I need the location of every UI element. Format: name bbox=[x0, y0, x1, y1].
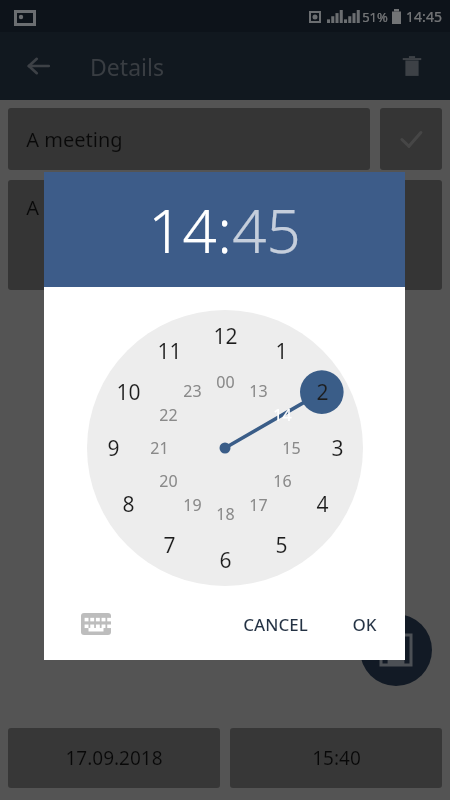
staticText: 17 bbox=[249, 494, 268, 516]
button[interactable]: A meeting bbox=[8, 108, 370, 170]
button[interactable]: 1 bbox=[264, 334, 298, 368]
staticText: : bbox=[217, 189, 232, 271]
staticText: 51% bbox=[362, 8, 388, 26]
button[interactable]: 22 bbox=[151, 398, 185, 432]
staticText: 3 bbox=[331, 434, 344, 463]
staticText: Details bbox=[90, 51, 164, 82]
button[interactable]: 20 bbox=[151, 464, 185, 498]
staticText: CANCEL bbox=[243, 613, 308, 636]
button[interactable]: 4 bbox=[305, 487, 339, 521]
button[interactable]: 16 bbox=[265, 464, 299, 498]
staticText: 14:45 bbox=[406, 7, 442, 26]
staticText: 7 bbox=[163, 531, 176, 560]
button[interactable]: 15 bbox=[274, 431, 308, 465]
staticText: 16 bbox=[273, 470, 292, 492]
button[interactable]: 6 bbox=[208, 543, 242, 577]
staticText: 20 bbox=[159, 470, 178, 492]
button[interactable]: 3 bbox=[320, 431, 354, 465]
button[interactable]: 00 bbox=[208, 365, 242, 399]
button[interactable]: 15:40 bbox=[230, 728, 442, 788]
staticText: 15 bbox=[282, 437, 301, 459]
button[interactable]: CANCEL bbox=[233, 605, 318, 644]
button[interactable]: 14 bbox=[265, 398, 299, 432]
button[interactable]: A n bbox=[8, 180, 442, 290]
staticText: 45 bbox=[232, 189, 301, 271]
button[interactable]: 8 bbox=[111, 487, 145, 521]
button[interactable]: 12 bbox=[208, 319, 242, 353]
staticText: 15:40 bbox=[312, 745, 361, 771]
staticText: 22 bbox=[159, 404, 178, 426]
button[interactable]: Save bbox=[360, 614, 432, 686]
staticText: 14 bbox=[273, 404, 292, 426]
button[interactable]: Switch to keyboard input bbox=[74, 602, 118, 646]
staticText: 5 bbox=[275, 531, 288, 560]
staticText: 4 bbox=[316, 490, 329, 519]
staticText: 23 bbox=[183, 380, 202, 402]
staticText: 10 bbox=[116, 378, 141, 407]
button[interactable]: 13 bbox=[241, 374, 275, 408]
button[interactable]: 21 bbox=[142, 431, 176, 465]
button[interactable]: 17.09.2018 bbox=[8, 728, 220, 788]
staticText: 8 bbox=[122, 490, 135, 519]
button[interactable]: 5 bbox=[264, 528, 298, 562]
button[interactable]: 2 bbox=[305, 375, 339, 409]
staticText: OK bbox=[352, 613, 377, 636]
button[interactable]: 45 bbox=[232, 189, 301, 271]
button[interactable]: 10 bbox=[111, 375, 145, 409]
staticText: 19 bbox=[183, 494, 202, 516]
staticText: 00 bbox=[216, 371, 235, 393]
staticText: 18 bbox=[216, 503, 235, 525]
staticText: 2 bbox=[316, 378, 329, 407]
button[interactable]: Back bbox=[16, 44, 60, 88]
button[interactable]: 7 bbox=[152, 528, 186, 562]
staticText: 12 bbox=[213, 322, 238, 351]
staticText: A meeting bbox=[26, 126, 123, 153]
staticText: 6 bbox=[219, 546, 232, 575]
button[interactable]: 14 bbox=[148, 189, 217, 271]
staticText: 11 bbox=[157, 337, 182, 366]
button[interactable]: 23 bbox=[175, 374, 209, 408]
staticText: 14 bbox=[148, 189, 217, 271]
button[interactable]: 18 bbox=[208, 497, 242, 531]
staticText: 9 bbox=[107, 434, 120, 463]
button[interactable]: Delete bbox=[390, 44, 434, 88]
staticText: 17.09.2018 bbox=[65, 745, 163, 771]
button[interactable]: OK bbox=[342, 605, 387, 644]
button[interactable]: 9 bbox=[96, 431, 130, 465]
button[interactable]: 11 bbox=[152, 334, 186, 368]
staticText: 21 bbox=[150, 437, 169, 459]
staticText: A n bbox=[26, 194, 57, 221]
button[interactable]: 19 bbox=[175, 488, 209, 522]
button[interactable]: 17 bbox=[241, 488, 275, 522]
staticText: 1 bbox=[275, 337, 288, 366]
staticText: 13 bbox=[249, 380, 268, 402]
